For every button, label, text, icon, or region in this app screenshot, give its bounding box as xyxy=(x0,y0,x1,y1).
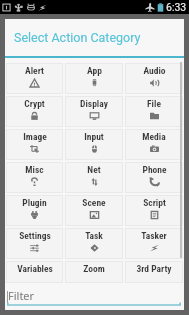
button[interactable]: Filter xyxy=(7,284,181,310)
staticText: Zoom xyxy=(83,263,105,274)
button[interactable]: Scene xyxy=(65,195,123,226)
staticText: Alert xyxy=(25,65,44,76)
button[interactable]: Alert xyxy=(6,63,63,94)
button[interactable]: Script xyxy=(125,195,183,226)
staticText: Select Action Category xyxy=(14,30,141,45)
staticText: Crypt xyxy=(24,98,45,109)
button[interactable]: Zoom xyxy=(65,261,123,283)
staticText: Scene xyxy=(82,197,106,208)
staticText: Net xyxy=(87,164,101,175)
staticText: Script xyxy=(143,197,166,208)
button[interactable]: Input xyxy=(65,129,123,160)
button[interactable]: Task xyxy=(65,228,123,259)
staticText: 3rd Party xyxy=(136,263,172,274)
button[interactable]: Plugin xyxy=(6,195,63,226)
staticText: Image xyxy=(23,131,47,142)
button[interactable]: Media xyxy=(125,129,183,160)
button[interactable]: App xyxy=(65,63,123,94)
button[interactable]: Tasker xyxy=(125,228,183,259)
button[interactable]: Misc xyxy=(6,162,63,193)
staticText: Task xyxy=(85,230,103,241)
staticText: Misc xyxy=(25,164,44,175)
staticText: 6:33 xyxy=(166,1,187,13)
button[interactable]: Settings xyxy=(6,228,63,259)
staticText: Filter xyxy=(8,288,35,303)
staticText: File xyxy=(147,98,161,109)
staticText: Audio xyxy=(143,65,166,76)
button[interactable]: Audio xyxy=(125,63,183,94)
button[interactable]: Display xyxy=(65,96,123,127)
staticText: Input xyxy=(84,131,104,142)
button[interactable]: Crypt xyxy=(6,96,63,127)
button[interactable]: Variables xyxy=(6,261,63,283)
button[interactable]: 3rd Party xyxy=(125,261,183,283)
button[interactable]: Net xyxy=(65,162,123,193)
staticText: Settings xyxy=(19,230,51,241)
staticText: Media xyxy=(142,131,166,142)
staticText: Phone xyxy=(142,164,167,175)
staticText: App xyxy=(87,65,102,76)
staticText: Variables xyxy=(17,263,53,274)
staticText: Display xyxy=(80,98,108,109)
button[interactable]: Phone xyxy=(125,162,183,193)
button[interactable]: Image xyxy=(6,129,63,160)
staticText: Plugin xyxy=(22,197,47,208)
button[interactable]: File xyxy=(125,96,183,127)
staticText: Tasker xyxy=(141,230,167,241)
